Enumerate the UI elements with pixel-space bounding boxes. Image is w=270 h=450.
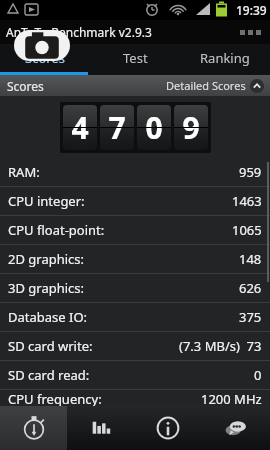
staticText: 1200 MHz	[201, 390, 262, 406]
staticText: Detailed Scores	[166, 78, 246, 93]
staticText: 2D graphics:	[8, 250, 85, 268]
staticText: Ranking	[200, 49, 250, 67]
button[interactable]: More options	[237, 27, 264, 38]
button[interactable]: Ranking	[180, 44, 270, 71]
staticText: SD card write:	[8, 337, 93, 355]
button[interactable]: Scores	[0, 44, 90, 71]
staticText: Database IO:	[8, 308, 88, 326]
staticText: 1065	[232, 221, 262, 239]
staticText: CPU frequency:	[8, 390, 102, 406]
staticText: 626	[239, 279, 262, 297]
button[interactable]: Test	[0, 406, 67, 450]
staticText: CPU integer:	[8, 192, 85, 210]
button[interactable]: Comments	[202, 406, 270, 450]
button[interactable]: 2D graphics:	[0, 245, 270, 273]
button[interactable]: Test	[90, 44, 180, 71]
staticText: AnTuTu Benchmark v2.9.3	[6, 24, 152, 40]
staticText: 0	[254, 366, 262, 384]
staticText: 375	[239, 308, 262, 326]
button[interactable]: Detailed Scores	[166, 78, 264, 93]
staticText: 4	[71, 107, 89, 148]
staticText: 148	[239, 250, 262, 268]
staticText: 9	[182, 107, 200, 148]
staticText: Test	[123, 49, 148, 67]
button[interactable]: Info	[134, 406, 202, 450]
button[interactable]: CPU float-point:	[0, 216, 270, 244]
staticText: 7	[108, 107, 126, 148]
button[interactable]: RAM:	[0, 158, 270, 186]
staticText: 959	[239, 163, 262, 181]
staticText: RAM:	[8, 163, 40, 181]
staticText: 19:39	[236, 2, 267, 18]
staticText: SD card read:	[8, 366, 90, 384]
button[interactable]: 3D graphics:	[0, 274, 270, 302]
button[interactable]: SD card write:	[0, 332, 270, 360]
button[interactable]: SD card read:	[0, 361, 270, 389]
button[interactable]: Scores	[67, 406, 134, 450]
button[interactable]: CPU frequency:	[0, 390, 270, 406]
button[interactable]: Database IO:	[0, 303, 270, 331]
staticText: (7.3 MB/s) 73	[179, 337, 262, 355]
staticText: 1463	[232, 192, 262, 210]
staticText: 0	[145, 107, 163, 148]
button[interactable]: CPU integer:	[0, 187, 270, 215]
staticText: CPU float-point:	[8, 221, 105, 239]
staticText: Scores	[25, 49, 65, 67]
staticText: Scores	[7, 78, 44, 94]
staticText: 3D graphics:	[8, 279, 85, 297]
